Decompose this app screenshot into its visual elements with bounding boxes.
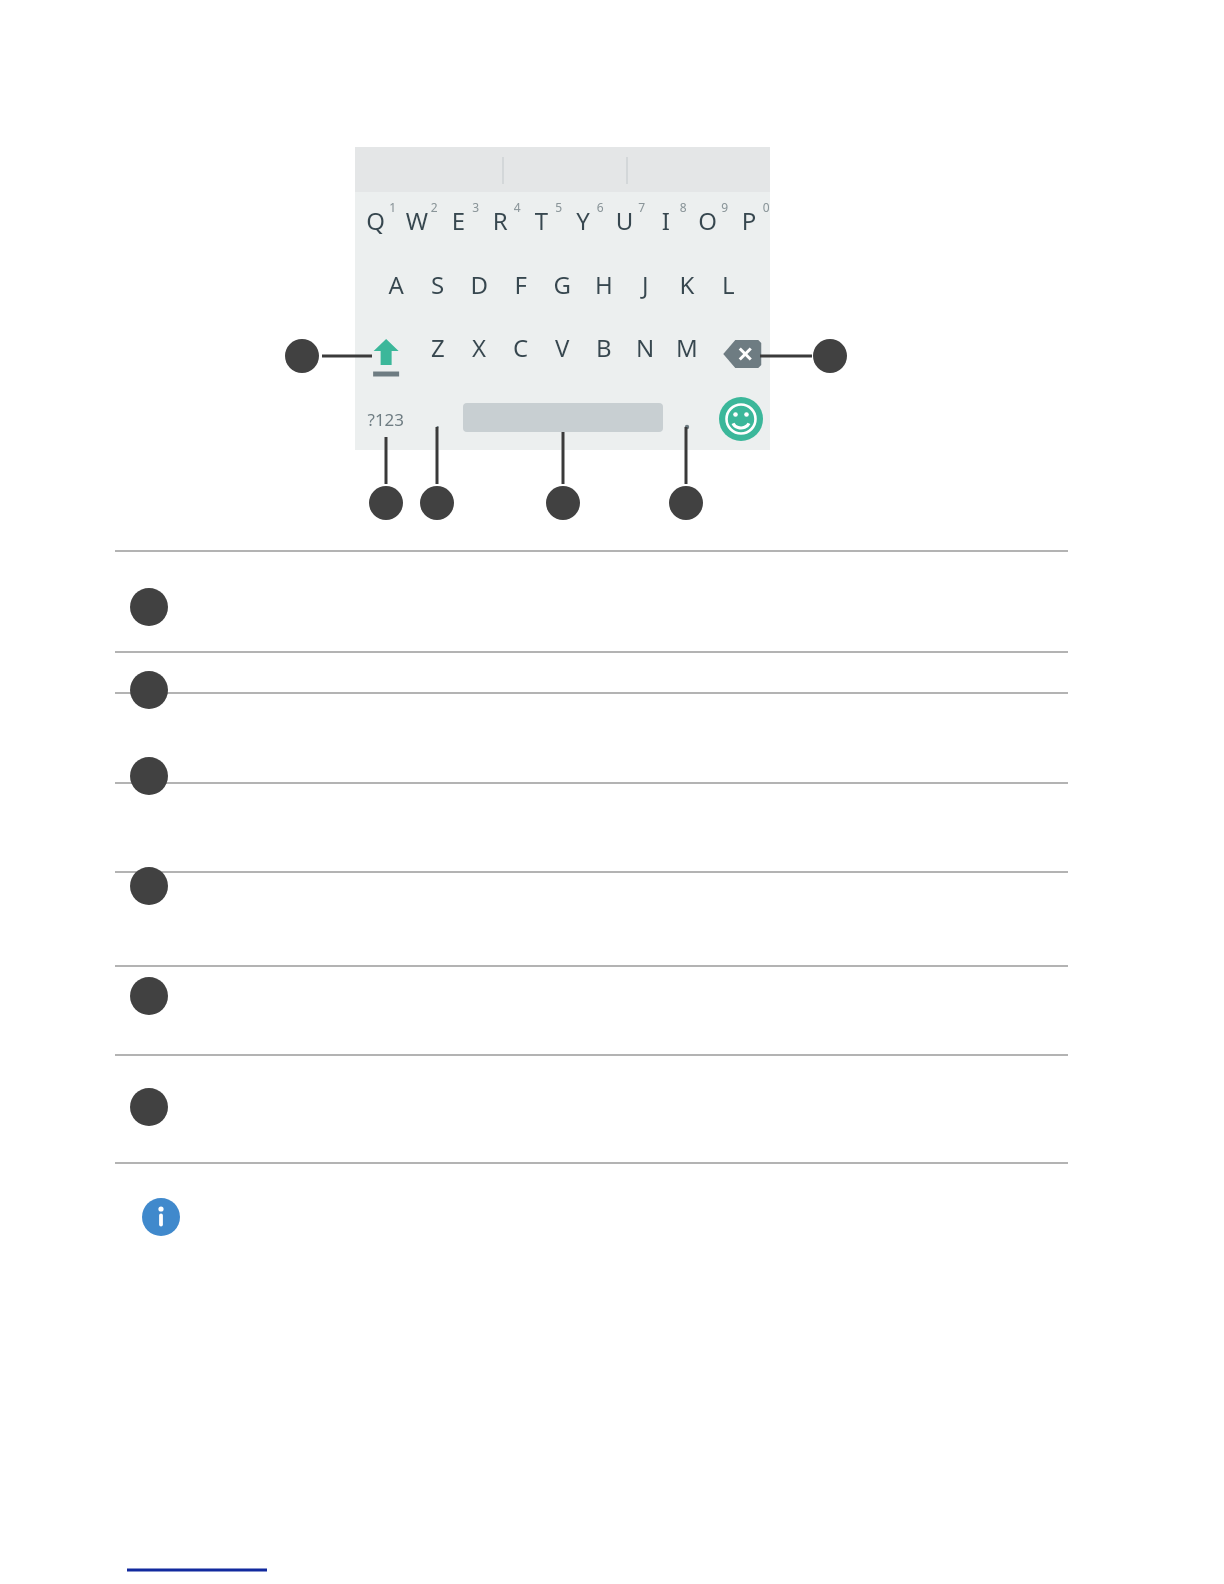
button[interactable]: Symbols ?123 — [357, 396, 419, 446]
button[interactable]: Period — [665, 396, 709, 446]
button[interactable]: Comma — [419, 396, 463, 446]
button[interactable]: Emoji — [717, 396, 765, 444]
button[interactable]: Backspace — [716, 330, 768, 382]
button[interactable]: Information — [141, 1197, 181, 1237]
button[interactable]: Space — [463, 398, 663, 438]
button[interactable]: Shift — [355, 330, 405, 382]
